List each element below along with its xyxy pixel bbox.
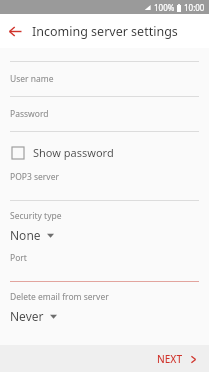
- staticText: Incoming server settings: [32, 23, 178, 40]
- staticText: Never: [10, 308, 44, 324]
- button[interactable]: Never: [0, 307, 209, 325]
- button[interactable]: User name: [0, 73, 209, 85]
- staticText: Delete email from server: [10, 291, 109, 303]
- button[interactable]: None: [0, 226, 209, 244]
- button[interactable]: POP3 server: [0, 171, 209, 183]
- staticText: Port: [10, 252, 27, 264]
- staticText: Password: [10, 108, 49, 120]
- button[interactable]: Show password: [0, 141, 209, 164]
- button[interactable]: Password: [0, 108, 209, 120]
- staticText: 10:00: [184, 2, 205, 13]
- staticText: Show password: [33, 145, 114, 160]
- staticText: Security type: [10, 210, 62, 222]
- staticText: User name: [10, 73, 54, 85]
- staticText: 100%: [154, 2, 175, 13]
- staticText: POP3 server: [10, 171, 59, 183]
- button[interactable]: Port: [0, 252, 209, 264]
- button[interactable]: Back: [0, 16, 30, 46]
- staticText: None: [10, 227, 41, 243]
- button[interactable]: NEXT: [145, 347, 209, 371]
- staticText: NEXT: [157, 352, 183, 366]
